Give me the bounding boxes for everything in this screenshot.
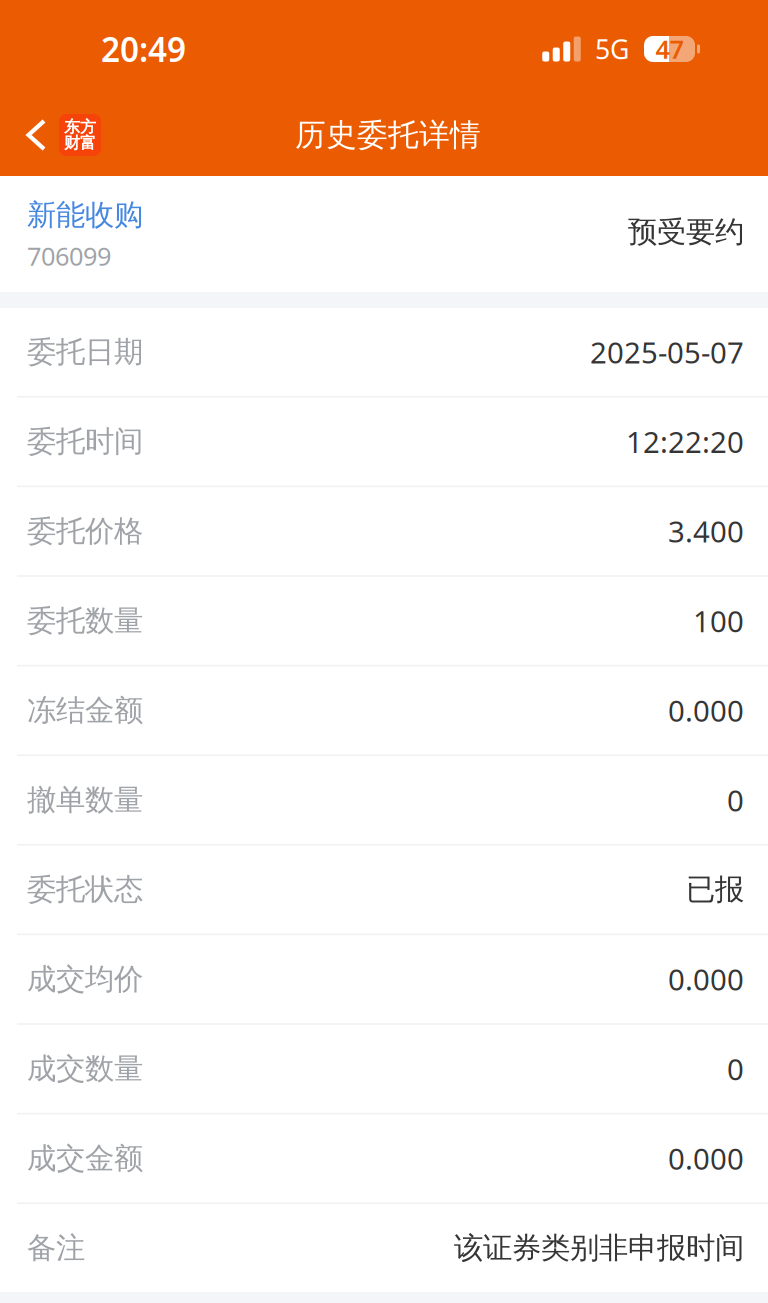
staticText: 委托状态: [27, 872, 143, 908]
staticText: 委托日期: [27, 334, 143, 370]
staticText: 已报: [686, 872, 744, 908]
staticText: 预受要约: [628, 214, 744, 250]
staticText: 0.000: [668, 691, 744, 730]
staticText: 12:22:20: [626, 422, 744, 461]
staticText: 47: [655, 32, 683, 66]
staticText: 0.000: [668, 960, 744, 999]
staticText: 委托价格: [27, 513, 143, 549]
staticText: 备注: [27, 1230, 85, 1266]
staticText: 委托时间: [27, 424, 143, 460]
staticText: 撤单数量: [27, 782, 143, 818]
staticText: 东方: [64, 117, 96, 137]
staticText: 该证券类别非申报时间: [454, 1230, 744, 1266]
button[interactable]: Back: [0, 98, 119, 176]
staticText: 0: [727, 780, 744, 819]
staticText: 0: [727, 1049, 744, 1088]
staticText: 委托数量: [27, 603, 143, 639]
staticText: 成交金额: [27, 1140, 143, 1176]
staticText: 新能收购: [27, 197, 143, 233]
staticText: 2025-05-07: [590, 332, 744, 371]
staticText: 3.400: [668, 512, 744, 551]
staticText: 历史委托详情: [295, 116, 481, 154]
staticText: 财富: [64, 133, 96, 153]
staticText: 100: [693, 601, 744, 640]
staticText: 5G: [595, 31, 629, 67]
button[interactable]: 新能收购: [27, 176, 143, 292]
staticText: 成交均价: [27, 961, 143, 997]
staticText: 20:49: [101, 27, 186, 71]
staticText: 冻结金额: [27, 692, 143, 728]
staticText: 0.000: [668, 1139, 744, 1178]
staticText: 成交数量: [27, 1051, 143, 1087]
staticText: 706099: [27, 239, 111, 273]
